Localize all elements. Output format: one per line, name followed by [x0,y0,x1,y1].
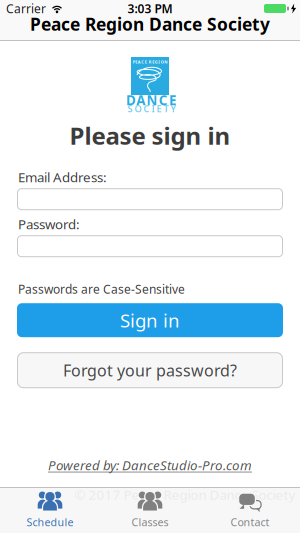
staticText: © 2017 Peace Region Dance Society [74,486,295,503]
staticText: Passwords are Case-Sensitive [18,281,185,297]
staticText: Peace Region Dance Society [30,12,270,35]
button[interactable]: Email Address [17,188,283,210]
button[interactable]: Password [17,235,283,257]
staticText: Forgot your password? [63,360,237,381]
staticText: Contact [230,515,269,529]
staticText: Classes [131,515,168,529]
staticText: Schedule [26,515,73,529]
staticText: Powered by: DanceStudio-Pro.com [48,456,252,474]
staticText: PEACE REGION [133,59,167,65]
staticText: Email Address: [18,168,107,186]
staticText: DANCE [126,91,176,109]
button[interactable]: Classes [100,489,200,531]
button[interactable]: Schedule [0,489,100,531]
staticText: S O C I E T Y [127,102,175,115]
button[interactable]: Powered by: DanceStudio-Pro.com [48,456,252,474]
staticText: Password: [18,215,80,233]
staticText: 3:03 PM [127,0,172,16]
button[interactable]: Sign in [17,303,283,337]
button[interactable]: Contact [200,489,300,531]
button[interactable]: Forgot your password? [17,352,283,388]
staticText: Please sign in [69,119,230,151]
staticText: Carrier [6,0,46,16]
staticText: Sign in [120,308,180,333]
